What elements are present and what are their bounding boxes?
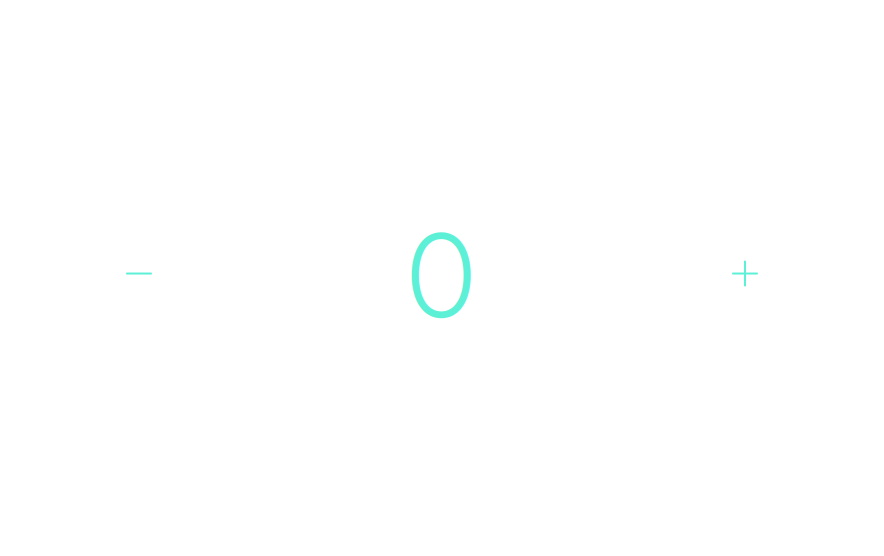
button[interactable]: Increase [687,213,807,333]
staticText: 0 [407,206,475,345]
button[interactable]: Decrease [79,213,199,333]
